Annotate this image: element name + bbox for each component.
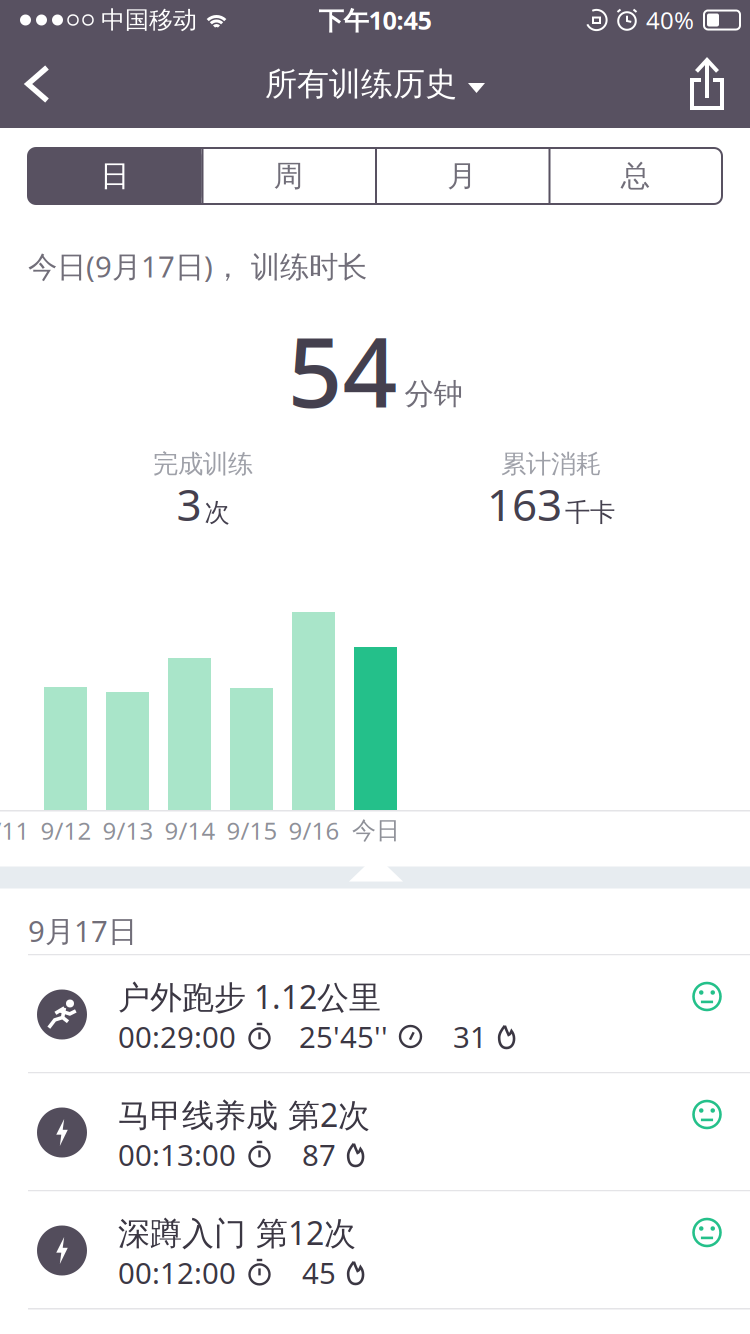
staticText: 9/13 — [102, 815, 153, 846]
staticText: 户外跑步 1.12公里 — [118, 975, 381, 1018]
staticText: 月 — [447, 158, 476, 194]
staticText: 54 — [287, 306, 397, 434]
staticText: 次 — [204, 497, 229, 528]
staticText: 今日 — [352, 816, 400, 845]
staticText: 累计消耗 — [501, 448, 601, 479]
staticText: 周 — [274, 158, 303, 194]
staticText: 马甲线养成 第2次 — [118, 1093, 370, 1136]
staticText: 00:13:00 — [118, 1135, 236, 1174]
staticText: 00:29:00 — [118, 1017, 236, 1056]
staticText: 下午10:45 — [318, 3, 431, 37]
staticText: 40% — [646, 4, 694, 36]
staticText: 9/15 — [226, 815, 277, 846]
staticText: 9/11 — [0, 815, 29, 846]
button[interactable]: 所有训练历史 — [265, 64, 485, 104]
button[interactable]: 分享 — [675, 42, 750, 126]
staticText: 总 — [621, 158, 650, 194]
button[interactable]: 深蹲入门 第12次 — [0, 1191, 750, 1309]
staticText: 深蹲入门 第12次 — [118, 1211, 356, 1254]
staticText: 3 — [176, 475, 201, 533]
staticText: 00:12:00 — [118, 1253, 236, 1292]
staticText: 完成训练 — [153, 448, 253, 479]
staticText: 163 — [487, 475, 562, 533]
staticText: 9/14 — [164, 815, 215, 846]
staticText: 分钟 — [404, 376, 462, 412]
staticText: 25'45'' — [299, 1017, 388, 1056]
button[interactable]: 月 — [375, 148, 548, 204]
button[interactable]: 返回 — [0, 41, 69, 126]
button[interactable]: 户外跑步 1.12公里 — [0, 955, 750, 1073]
staticText: 千卡 — [565, 497, 615, 528]
staticText: 87 — [302, 1135, 336, 1174]
button[interactable]: 日 — [28, 148, 201, 204]
staticText: 日 — [100, 158, 129, 194]
staticText: 9/12 — [40, 815, 91, 846]
staticText: 所有训练历史 — [265, 64, 457, 104]
staticText: 31 — [453, 1017, 487, 1056]
staticText: 中国移动 — [101, 5, 197, 35]
button[interactable]: 周 — [201, 148, 375, 204]
staticText: 9月17日 — [28, 911, 137, 950]
staticText: 今日(9月17日)， 训练时长 — [28, 246, 367, 285]
button[interactable]: 马甲线养成 第2次 — [0, 1073, 750, 1191]
button[interactable]: 总 — [548, 148, 722, 204]
staticText: 45 — [302, 1253, 336, 1292]
staticText: 9/16 — [288, 815, 339, 846]
